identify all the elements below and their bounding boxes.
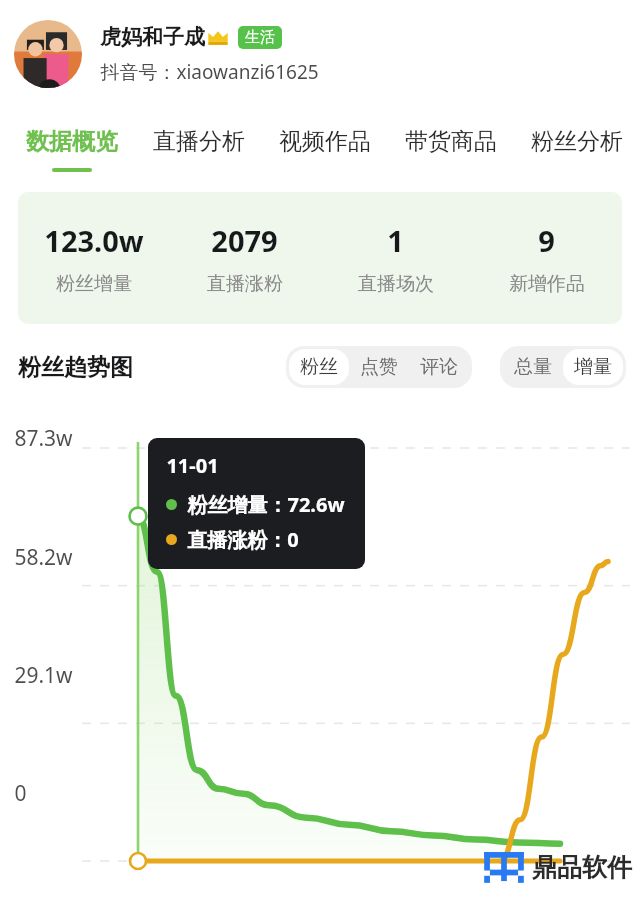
staticText: 粉丝增量	[56, 272, 132, 296]
staticText: 29.1w	[14, 661, 73, 690]
staticText: 增量	[574, 355, 612, 379]
staticText: 2079	[211, 221, 278, 260]
staticText: 9	[538, 221, 555, 260]
button[interactable]: 带货商品	[388, 108, 514, 192]
staticText: 直播涨粉：0	[187, 526, 299, 553]
staticText: 带货商品	[405, 127, 497, 156]
staticText: 直播分析	[153, 127, 245, 156]
staticText: 新增作品	[509, 272, 585, 296]
staticText: 0	[14, 779, 27, 808]
staticText: 总量	[514, 355, 552, 379]
button[interactable]: 鼎品软件 水印	[482, 845, 632, 889]
staticText: 视频作品	[279, 127, 371, 156]
button[interactable]: 粉丝分析	[514, 108, 640, 192]
button[interactable]: 虎妈和子成	[0, 0, 640, 108]
button[interactable]: 123.0w	[18, 192, 622, 324]
staticText: 抖音号：xiaowanzi61625	[100, 59, 319, 85]
button[interactable]: 视频作品	[262, 108, 388, 192]
staticText: 粉丝	[300, 355, 338, 379]
staticText: 粉丝分析	[531, 127, 623, 156]
staticText: 87.3w	[14, 424, 73, 453]
staticText: 11-01	[166, 452, 219, 479]
button[interactable]: 数据概览	[8, 108, 135, 192]
button[interactable]: 增量	[563, 349, 623, 385]
staticText: 生活	[245, 28, 275, 47]
staticText: 58.2w	[14, 543, 73, 572]
other: 数据提示 11-01	[166, 452, 345, 553]
staticText: 直播场次	[358, 272, 434, 296]
staticText: 评论	[420, 355, 458, 379]
button[interactable]: 评论	[409, 349, 469, 385]
staticText: 粉丝趋势图	[18, 353, 133, 382]
staticText: 点赞	[360, 355, 398, 379]
button[interactable]: 直播分析	[135, 108, 262, 192]
button[interactable]: 点赞	[349, 349, 409, 385]
staticText: 鼎品软件	[532, 852, 632, 883]
staticText: 直播涨粉	[207, 272, 283, 296]
staticText: 粉丝增量：72.6w	[187, 491, 345, 518]
staticText: 数据概览	[26, 127, 118, 156]
button[interactable]: 粉丝	[289, 349, 349, 385]
staticText: 123.0w	[44, 221, 144, 260]
staticText: 虎妈和子成	[100, 24, 205, 50]
staticText: 1	[387, 221, 404, 260]
button[interactable]: 总量	[503, 349, 563, 385]
